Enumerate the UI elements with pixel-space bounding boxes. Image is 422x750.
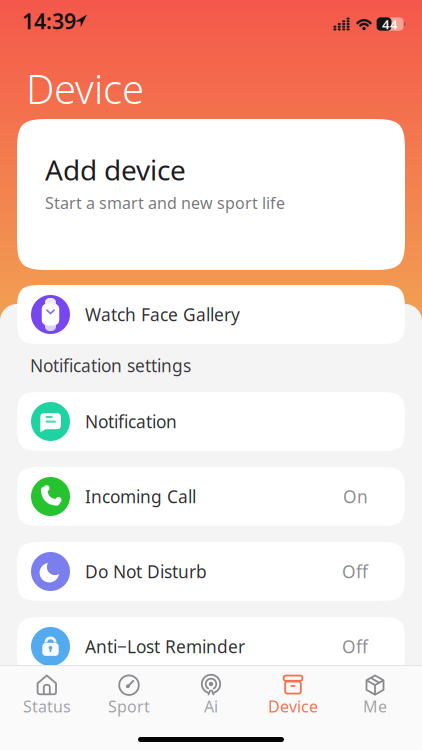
staticText: Off [342,635,368,658]
staticText: Me [363,696,387,717]
staticText: Off [342,560,368,583]
staticText: Incoming Call [85,485,196,508]
staticText: Device [26,62,144,115]
staticText: Anti−Lost Reminder [85,635,245,658]
staticText: Ai [204,696,218,717]
staticText: Start a smart and new sport life [45,192,285,213]
staticText: On [343,485,368,508]
staticText: Notification [85,410,177,433]
button[interactable]: Do Not Disturb [17,542,405,601]
staticText: 14:39 [22,7,76,35]
staticText: 44 [382,15,398,33]
staticText: Watch Face Gallery [85,303,240,326]
button[interactable]: Incoming Call [17,467,405,526]
staticText: Do Not Disturb [85,560,207,583]
staticText: Notification settings [30,354,191,377]
button[interactable]: Add device [17,119,405,270]
staticText: Add device [45,151,186,188]
button[interactable]: Status [6,672,88,720]
button[interactable]: Notification [17,392,405,451]
staticText: Sport [108,696,150,717]
button[interactable]: Anti−Lost Reminder [17,617,405,676]
staticText: Status [23,696,71,717]
button[interactable]: Ai [170,672,252,720]
button[interactable]: Watch Face Gallery [17,285,405,344]
staticText: Device [268,696,318,717]
button[interactable]: Me [334,672,416,720]
button[interactable]: Device [252,672,334,720]
button[interactable]: Sport [88,672,170,720]
